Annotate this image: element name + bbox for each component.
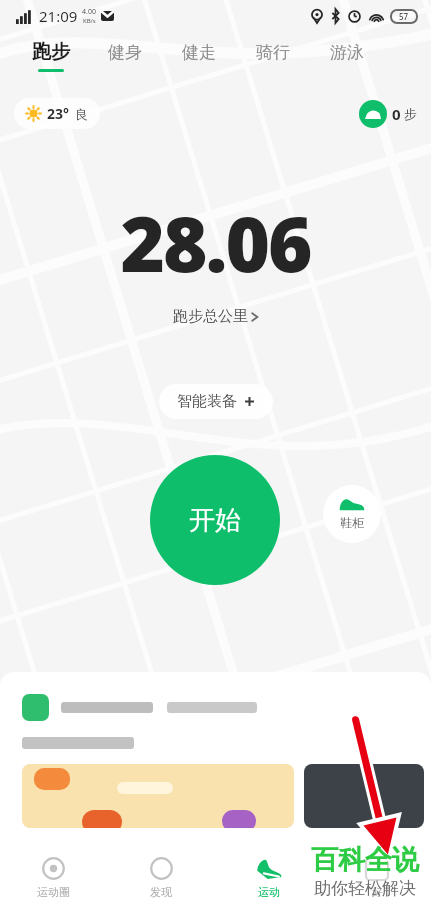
staticText: 智能装备 [177,392,237,411]
button[interactable]: 健走 [162,32,236,80]
button[interactable]: 游泳 [310,32,384,80]
staticText: 骑行 [256,42,290,63]
button[interactable]: 运动圈 [0,845,107,911]
staticText: 跑步 [32,40,70,64]
staticText: 健身 [108,42,142,63]
staticText: KB/s [83,17,96,25]
staticText: 健走 [182,42,216,63]
button[interactable]: 23° [14,98,100,129]
staticText: 发现 [150,885,172,899]
button[interactable]: 运动 [215,845,323,911]
button[interactable]: 发现 [107,845,215,911]
staticText: 百科全说 [311,843,419,877]
button[interactable] [22,694,257,721]
staticText: 运动 [258,885,280,899]
button[interactable]: 0 [359,100,417,128]
button[interactable]: 骑行 [236,32,310,80]
button[interactable]: 鞋柜 [323,485,381,543]
button[interactable]: 好 [323,845,431,911]
staticText: 4.00 [82,7,96,17]
button[interactable] [22,764,294,828]
staticText: 21:09 [39,6,78,26]
button[interactable]: 开始 [150,455,280,585]
staticText: 好 [372,885,383,899]
button[interactable]: 跑步总公里 [173,307,259,326]
button[interactable]: 跑步 [14,32,88,80]
staticText: 开始 [189,504,241,537]
button[interactable]: 智能装备 [159,384,273,419]
staticText: 助你轻松解决 [314,878,416,899]
staticText: 23° [47,104,69,123]
staticText: 步 [404,106,417,122]
staticText: 跑步总公里 [173,307,248,326]
staticText: 28.06 [120,191,311,295]
staticText: 运动圈 [37,885,70,899]
staticText: 游泳 [330,42,364,63]
staticText: 0 [392,104,401,124]
staticText: 57 [399,11,409,22]
staticText: 鞋柜 [340,515,364,530]
button[interactable]: 健身 [88,32,162,80]
button[interactable] [304,764,424,828]
staticText: 良 [75,106,88,122]
